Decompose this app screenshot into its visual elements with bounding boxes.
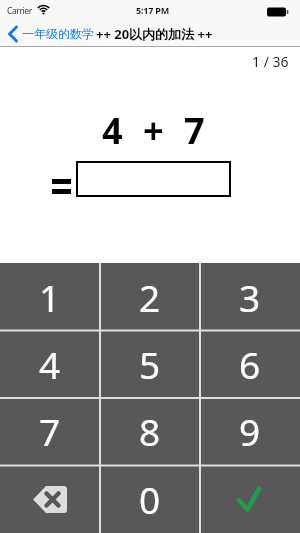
button[interactable] xyxy=(0,465,100,533)
staticText: 4 + 7 xyxy=(102,106,210,155)
button[interactable]: 9 xyxy=(200,397,300,465)
staticText: 6 xyxy=(239,339,261,389)
button[interactable] xyxy=(76,161,231,197)
button[interactable]: 1 xyxy=(0,263,100,330)
staticText: 2 xyxy=(139,272,161,322)
button[interactable] xyxy=(200,465,300,533)
button[interactable]: 4 xyxy=(0,330,100,397)
staticText: 7 xyxy=(39,406,61,456)
staticText: 3 xyxy=(239,272,261,322)
staticText: 一年级的数学 xyxy=(22,26,94,41)
staticText: Carrier xyxy=(7,5,32,17)
button[interactable]: 5 xyxy=(100,330,200,397)
button[interactable]: 3 xyxy=(200,263,300,330)
staticText: 0 xyxy=(139,474,161,524)
button[interactable]: 0 xyxy=(100,465,200,533)
staticText: 8 xyxy=(139,406,161,456)
staticText: ++ 20以内的加法 ++ xyxy=(96,25,213,43)
button[interactable]: 8 xyxy=(100,397,200,465)
staticText: 9 xyxy=(239,406,261,456)
staticText: 1 / 36 xyxy=(252,52,289,71)
button[interactable]: 一年级的数学 xyxy=(0,21,213,46)
staticText: 5:17 PM xyxy=(136,4,169,16)
staticText: 1 xyxy=(39,272,61,322)
staticText: 5 xyxy=(139,339,161,389)
button[interactable]: 2 xyxy=(100,263,200,330)
button[interactable]: 7 xyxy=(0,397,100,465)
button[interactable]: 6 xyxy=(200,330,300,397)
staticText: 4 xyxy=(39,339,61,389)
